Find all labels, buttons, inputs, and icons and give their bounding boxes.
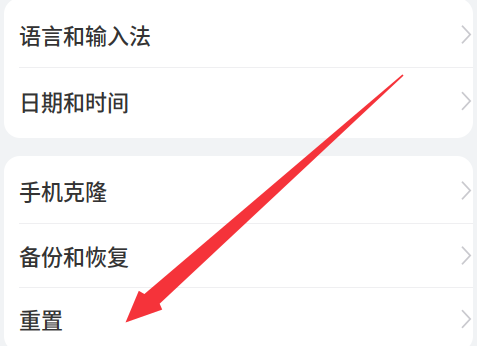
button[interactable]: 重置 [4,288,473,346]
staticText: 手机克隆 [19,175,107,206]
staticText: 日期和时间 [19,85,129,117]
staticText: 重置 [19,303,63,335]
button[interactable]: 备份和恢复 [4,224,473,288]
button[interactable]: 语言和输入法 [4,0,473,68]
staticText: 备份和恢复 [19,240,129,271]
button[interactable]: 日期和时间 [4,68,473,138]
staticText: 语言和输入法 [19,19,151,50]
button[interactable]: 手机克隆 [4,156,473,224]
